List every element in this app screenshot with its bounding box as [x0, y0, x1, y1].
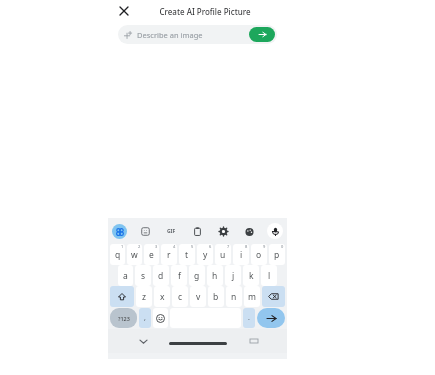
button[interactable]: u	[215, 244, 231, 265]
staticText: u	[220, 249, 226, 261]
button[interactable]: ,	[139, 308, 151, 328]
staticText: v	[196, 291, 201, 303]
staticText: a	[123, 270, 128, 282]
staticText: s	[141, 270, 146, 282]
staticText: 1	[121, 244, 124, 249]
staticText: j	[232, 270, 235, 282]
button[interactable]: z	[136, 286, 152, 307]
button[interactable]: c	[172, 286, 188, 307]
button[interactable]: Themes	[241, 223, 257, 239]
staticText: z	[142, 291, 146, 303]
button[interactable]: Stickers	[137, 223, 153, 239]
button[interactable]: x	[154, 286, 170, 307]
staticText: t	[185, 249, 189, 261]
button[interactable]: Clipboard	[189, 223, 205, 239]
button[interactable]: m	[244, 286, 260, 307]
button[interactable]: Hide keyboard	[136, 334, 150, 348]
staticText: d	[158, 270, 164, 282]
button[interactable]: p	[269, 244, 285, 265]
button[interactable]: v	[190, 286, 206, 307]
staticText: Create AI Profile Picture	[159, 6, 251, 17]
button[interactable]: d	[153, 265, 169, 286]
button[interactable]: k	[243, 265, 259, 286]
button[interactable]: n	[226, 286, 242, 307]
staticText: Describe an image	[137, 30, 203, 40]
staticText: r	[167, 249, 171, 261]
button[interactable]: r	[161, 244, 177, 265]
staticText: 9	[263, 244, 266, 249]
button[interactable]: y	[197, 244, 213, 265]
button[interactable]: h	[207, 265, 223, 286]
button[interactable]: l	[261, 265, 277, 286]
staticText: ,	[144, 313, 146, 323]
button[interactable]: Shift	[110, 286, 134, 307]
staticText: c	[178, 291, 183, 303]
staticText: 3	[155, 244, 158, 249]
staticText: 4	[173, 244, 176, 249]
button[interactable]: Close	[116, 3, 132, 19]
staticText: i	[240, 249, 243, 261]
staticText: .	[248, 313, 250, 323]
button[interactable]: Settings	[215, 223, 231, 239]
staticText: f	[178, 270, 181, 282]
staticText: x	[160, 291, 165, 303]
button[interactable]: Backspace	[262, 286, 285, 307]
staticText: q	[115, 249, 121, 261]
button[interactable]: o	[251, 244, 267, 265]
staticText: w	[131, 249, 138, 261]
button[interactable]: Emoji	[153, 308, 168, 328]
button[interactable]: Describe an image	[118, 25, 277, 44]
staticText: k	[249, 270, 254, 282]
staticText: h	[212, 270, 218, 282]
staticText: 5	[191, 244, 194, 249]
staticText: y	[203, 249, 208, 261]
staticText: b	[213, 291, 219, 303]
button[interactable]: Keyboard options	[112, 224, 127, 239]
staticText: GIF	[167, 228, 176, 235]
button[interactable]: b	[208, 286, 224, 307]
staticText: ?123	[118, 315, 130, 322]
staticText: o	[256, 249, 262, 261]
button[interactable]: f	[171, 265, 187, 286]
button[interactable]: Generate	[249, 27, 275, 42]
button[interactable]: ?123	[110, 308, 137, 328]
staticText: 6	[209, 244, 212, 249]
button[interactable]: s	[135, 265, 151, 286]
button[interactable]: Voice input	[267, 223, 283, 239]
button[interactable]: q	[110, 244, 125, 265]
button[interactable]: GIF	[163, 223, 179, 239]
button[interactable]: .	[243, 308, 255, 328]
staticText: 8	[245, 244, 248, 249]
staticText: 0	[281, 244, 284, 249]
button[interactable]: g	[189, 265, 205, 286]
staticText: 2	[138, 244, 141, 249]
button[interactable]: t	[179, 244, 195, 265]
staticText: m	[248, 291, 256, 303]
button[interactable]: j	[225, 265, 241, 286]
staticText: g	[194, 270, 200, 282]
staticText: p	[274, 249, 280, 261]
button[interactable]: Switch keyboard	[247, 334, 261, 348]
staticText: 7	[227, 244, 230, 249]
staticText: n	[231, 291, 237, 303]
button[interactable]: w	[127, 244, 142, 265]
button[interactable]: a	[118, 265, 133, 286]
button[interactable]: Enter	[257, 308, 285, 328]
staticText: l	[268, 270, 271, 282]
button[interactable]: i	[233, 244, 249, 265]
staticText: e	[149, 249, 154, 261]
button[interactable]: e	[144, 244, 159, 265]
